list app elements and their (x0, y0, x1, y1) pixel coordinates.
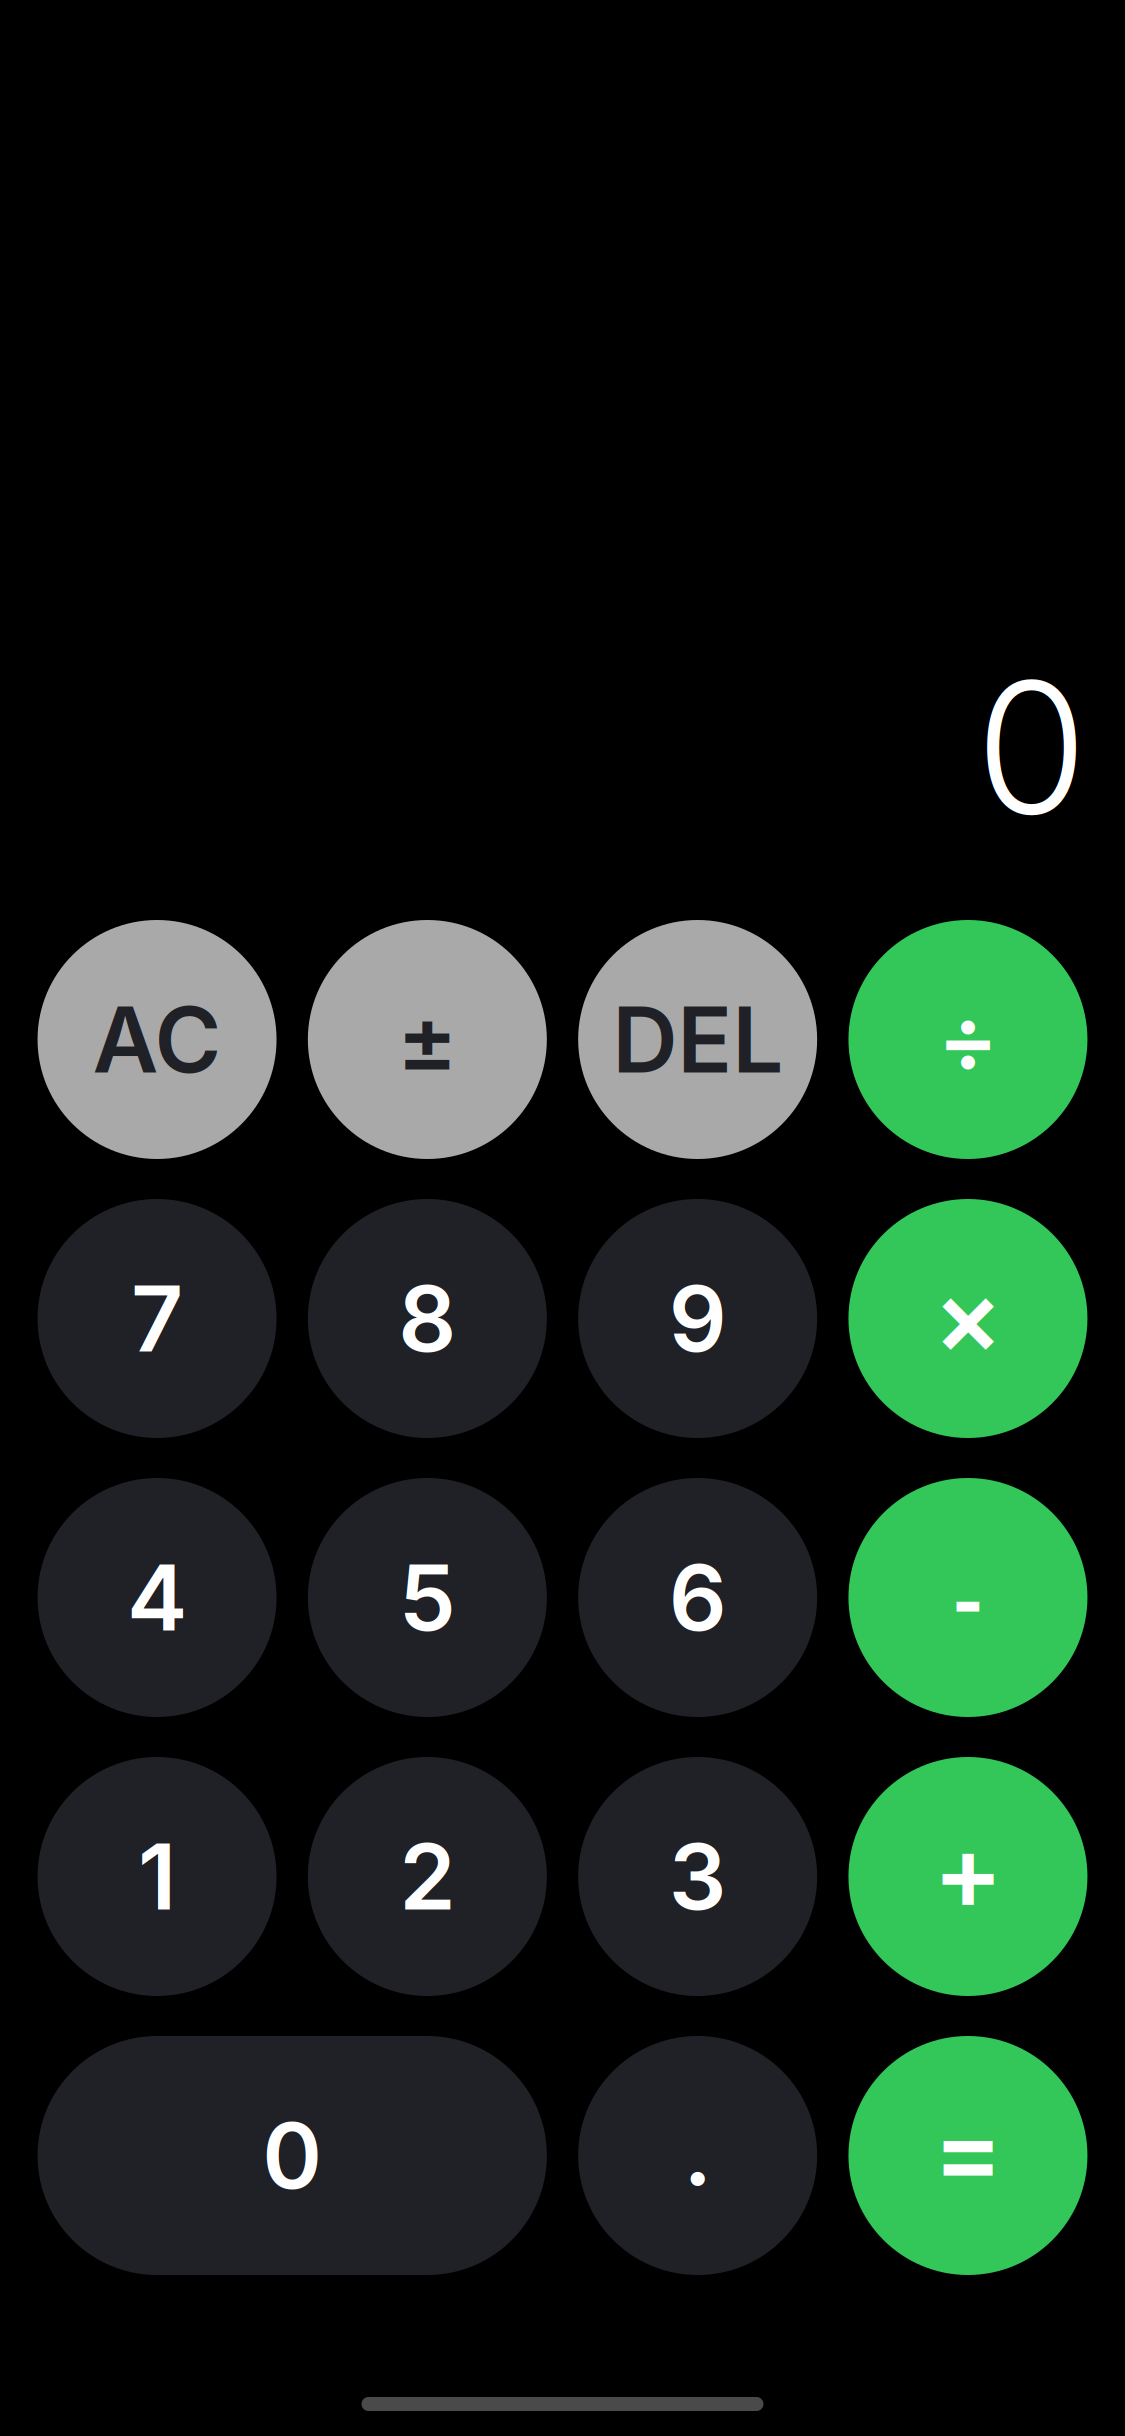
staticText: 6 (669, 1543, 727, 1652)
button[interactable]: DEL (578, 920, 817, 1159)
staticText: 7 (131, 1264, 183, 1373)
button[interactable]: 3 (578, 1757, 817, 1996)
staticText: = (933, 2088, 1003, 2213)
staticText: 5 (399, 1543, 456, 1652)
button[interactable]: 9 (578, 1199, 817, 1438)
staticText: + (933, 1809, 1003, 1935)
staticText: ÷ (937, 984, 998, 1093)
button[interactable]: Plus minus (308, 920, 547, 1159)
button[interactable]: 2 (308, 1757, 547, 1996)
staticText: 8 (398, 1264, 456, 1373)
staticText: ± (397, 985, 458, 1094)
staticText: 9 (669, 1264, 727, 1373)
staticText: 1 (138, 1822, 176, 1931)
button[interactable]: Plus (848, 1757, 1087, 1996)
button[interactable]: 6 (578, 1478, 817, 1717)
button[interactable]: 8 (308, 1199, 547, 1438)
staticText: 4 (127, 1543, 187, 1652)
button[interactable]: Equals (848, 2036, 1087, 2275)
staticText: . (683, 2097, 712, 2207)
button[interactable]: AC (37, 920, 276, 1159)
staticText: 2 (399, 1822, 455, 1931)
staticText: 0 (975, 638, 1087, 857)
button[interactable]: 0 (38, 2036, 547, 2275)
button[interactable]: Decimal point (578, 2036, 817, 2275)
staticText: - (952, 1561, 984, 1642)
button[interactable]: Divide (848, 920, 1087, 1159)
button[interactable]: 1 (37, 1757, 276, 1996)
button[interactable]: 7 (37, 1199, 276, 1438)
staticText: × (933, 1254, 1003, 1379)
staticText: DEL (612, 985, 783, 1094)
button[interactable]: Multiply (848, 1199, 1087, 1438)
button[interactable]: 4 (37, 1478, 276, 1717)
staticText: 0 (262, 2101, 322, 2210)
button[interactable]: 5 (308, 1478, 547, 1717)
button[interactable]: Minus (848, 1478, 1087, 1717)
staticText: AC (92, 985, 221, 1094)
staticText: 3 (669, 1822, 727, 1931)
